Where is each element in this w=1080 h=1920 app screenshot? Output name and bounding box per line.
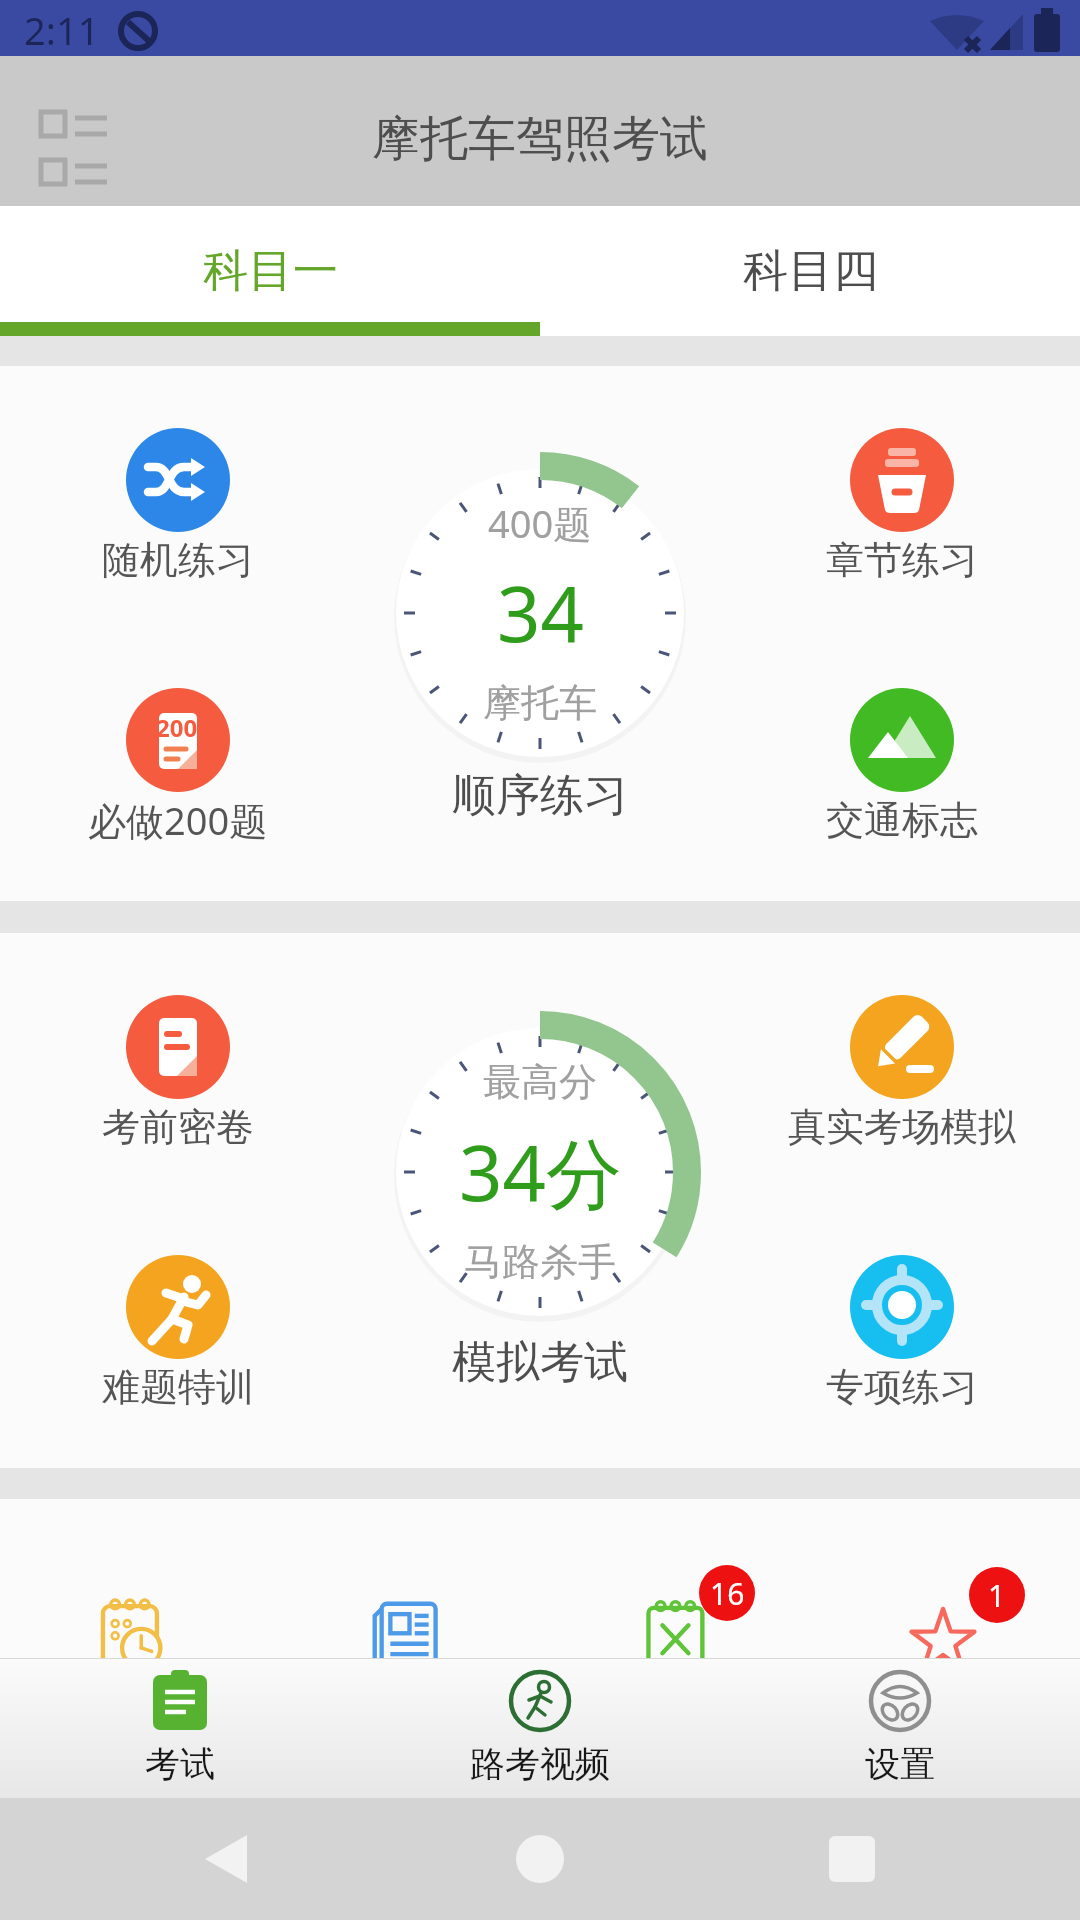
staticText: 必做200题 xyxy=(88,794,268,846)
staticText: 1 xyxy=(988,1575,1006,1616)
staticText: 设置 xyxy=(865,1742,935,1786)
button[interactable]: 顺序练习 xyxy=(340,764,740,826)
staticText: 顺序练习 xyxy=(452,768,628,823)
button[interactable] xyxy=(126,995,230,1099)
button[interactable] xyxy=(40,108,110,188)
button[interactable] xyxy=(126,428,230,532)
button[interactable] xyxy=(96,1594,176,1658)
staticText: 34 xyxy=(497,561,584,665)
staticText: 16 xyxy=(710,1573,745,1614)
button[interactable]: 设置 xyxy=(720,1658,1080,1798)
staticText: 模拟考试 xyxy=(452,1335,628,1390)
staticText: 交通标志 xyxy=(826,796,978,844)
button[interactable] xyxy=(638,1594,718,1658)
staticText: 考试 xyxy=(145,1742,215,1786)
button[interactable] xyxy=(850,688,954,792)
staticText: 摩托车驾照考试 xyxy=(372,109,708,169)
button[interactable] xyxy=(903,1595,983,1658)
staticText: 章节练习 xyxy=(826,536,978,584)
staticText: 2:11 xyxy=(24,4,100,52)
staticText: 考前密卷 xyxy=(102,1103,254,1151)
staticText: 400题 xyxy=(488,497,592,549)
staticText: 马路杀手 xyxy=(464,1238,616,1286)
button[interactable] xyxy=(850,995,954,1099)
button[interactable]: 考试 xyxy=(0,1658,360,1798)
staticText: 随机练习 xyxy=(102,536,254,584)
staticText: 科目一 xyxy=(203,243,338,300)
button[interactable] xyxy=(850,1255,954,1359)
staticText: 路考视频 xyxy=(470,1742,610,1786)
staticText: 真实考场模拟 xyxy=(788,1103,1016,1151)
button[interactable] xyxy=(850,428,954,532)
button[interactable] xyxy=(126,1255,230,1359)
staticText: 34分 xyxy=(459,1120,622,1224)
staticText: 难题特训 xyxy=(102,1363,254,1411)
button[interactable]: 模拟考试 xyxy=(340,1331,740,1393)
button[interactable] xyxy=(366,1595,446,1658)
staticText: 摩托车 xyxy=(483,679,597,727)
staticText: 科目四 xyxy=(743,243,878,300)
staticText: 专项练习 xyxy=(826,1363,978,1411)
staticText: 最高分 xyxy=(483,1058,597,1106)
button[interactable]: 科目一 xyxy=(0,206,540,336)
button[interactable]: 路考视频 xyxy=(360,1658,720,1798)
button[interactable]: 科目四 xyxy=(540,206,1080,336)
button[interactable] xyxy=(126,688,230,792)
staticText: 200 xyxy=(156,711,198,744)
